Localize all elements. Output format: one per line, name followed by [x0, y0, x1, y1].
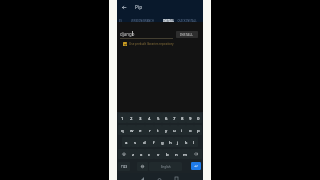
button[interactable]: QUICK INSTALL: [174, 14, 199, 22]
staticText: m: [183, 151, 188, 157]
staticText: QUICK INSTALL: [177, 19, 197, 22]
button[interactable]: l: [190, 137, 198, 147]
button[interactable]: z: [129, 149, 137, 159]
button[interactable]: 1: [118, 113, 127, 123]
button[interactable]: n: [172, 149, 181, 159]
button[interactable]: e: [136, 125, 145, 135]
button[interactable]: Use prebuilt libraries repository: [123, 41, 174, 47]
button[interactable]: English: [149, 162, 182, 171]
button[interactable]: x: [137, 149, 145, 159]
button[interactable]: Home: [156, 175, 163, 180]
staticText: INSTALL: [180, 33, 194, 37]
staticText: django: [120, 31, 135, 37]
staticText: 6: [165, 115, 168, 121]
staticText: i: [181, 127, 183, 133]
button[interactable]: 3: [136, 113, 145, 123]
button[interactable]: d: [140, 137, 149, 147]
button[interactable]: Back: [139, 175, 146, 180]
button[interactable]: 9: [186, 113, 194, 123]
button[interactable]: c: [145, 149, 154, 159]
staticText: 2: [130, 115, 133, 121]
staticText: o: [189, 127, 192, 133]
staticText: t: [157, 127, 159, 133]
button[interactable]: m: [181, 149, 190, 159]
staticText: English: [161, 165, 171, 169]
button[interactable]: k: [182, 137, 190, 147]
button[interactable]: Change keyboard: [137, 162, 148, 171]
staticText: r: [149, 127, 151, 133]
staticText: Use prebuilt libraries repository: [129, 42, 174, 46]
staticText: y: [165, 127, 168, 133]
staticText: g: [161, 139, 164, 145]
button[interactable]: j: [174, 137, 182, 147]
staticText: w: [130, 127, 134, 133]
staticText: s: [134, 139, 137, 145]
staticText: b: [166, 151, 169, 157]
button[interactable]: 5: [154, 113, 162, 123]
button[interactable]: Back: [118, 2, 129, 13]
staticText: h: [169, 139, 172, 145]
button[interactable]: r: [145, 125, 154, 135]
staticText: x: [140, 151, 143, 157]
staticText: d: [143, 139, 146, 145]
button[interactable]: p: [194, 125, 202, 135]
staticText: INSTALL: [163, 19, 174, 22]
button[interactable]: 7: [170, 113, 178, 123]
staticText: z: [132, 151, 135, 157]
button[interactable]: 4: [145, 113, 154, 123]
staticText: k: [185, 139, 188, 145]
button[interactable]: f: [149, 137, 158, 147]
button[interactable]: 0: [194, 113, 202, 123]
staticText: 1: [121, 115, 124, 121]
button[interactable]: ?123: [118, 162, 130, 171]
staticText: 8: [181, 115, 184, 121]
staticText: c: [148, 151, 151, 157]
button[interactable]: w: [127, 125, 136, 135]
button[interactable]: h: [166, 137, 174, 147]
staticText: n: [175, 151, 178, 157]
staticText: l: [193, 139, 195, 145]
staticText: e: [139, 127, 142, 133]
button[interactable]: 6: [162, 113, 170, 123]
button[interactable]: 8: [178, 113, 186, 123]
button[interactable]: b: [163, 149, 172, 159]
button[interactable]: Shift: [118, 149, 129, 159]
staticText: 0: [197, 115, 200, 121]
staticText: ?123: [121, 165, 128, 169]
button[interactable]: t: [154, 125, 162, 135]
staticText: ES: [119, 19, 122, 22]
button[interactable]: u: [170, 125, 178, 135]
button[interactable]: Recents: [173, 175, 180, 180]
button[interactable]: INSTALL: [176, 31, 198, 38]
button[interactable]: y: [162, 125, 170, 135]
button[interactable]: django: [120, 30, 173, 39]
button[interactable]: v: [154, 149, 163, 159]
staticText: q: [121, 127, 124, 133]
staticText: u: [173, 127, 176, 133]
staticText: 4: [148, 115, 151, 121]
staticText: 5: [157, 115, 160, 121]
button[interactable]: INSTALL: [160, 14, 176, 22]
staticText: v: [157, 151, 160, 157]
button[interactable]: q: [118, 125, 127, 135]
button[interactable]: a: [122, 137, 131, 147]
button[interactable]: Enter: [191, 162, 201, 170]
button[interactable]: o: [186, 125, 194, 135]
staticText: 9: [189, 115, 192, 121]
button[interactable]: VERSION/BRANCH: [127, 14, 158, 22]
staticText: 7: [173, 115, 176, 121]
button[interactable]: s: [131, 137, 140, 147]
staticText: Pip: [135, 4, 143, 10]
staticText: 3: [139, 115, 142, 121]
staticText: f: [153, 139, 155, 145]
button[interactable]: ES: [116, 14, 124, 22]
staticText: a: [125, 139, 128, 145]
staticText: p: [197, 127, 200, 133]
staticText: j: [177, 139, 179, 145]
button[interactable]: g: [158, 137, 166, 147]
button[interactable]: Backspace: [190, 149, 202, 159]
button[interactable]: 2: [127, 113, 136, 123]
button[interactable]: i: [178, 125, 186, 135]
staticText: VERSION/BRANCH: [131, 19, 154, 22]
